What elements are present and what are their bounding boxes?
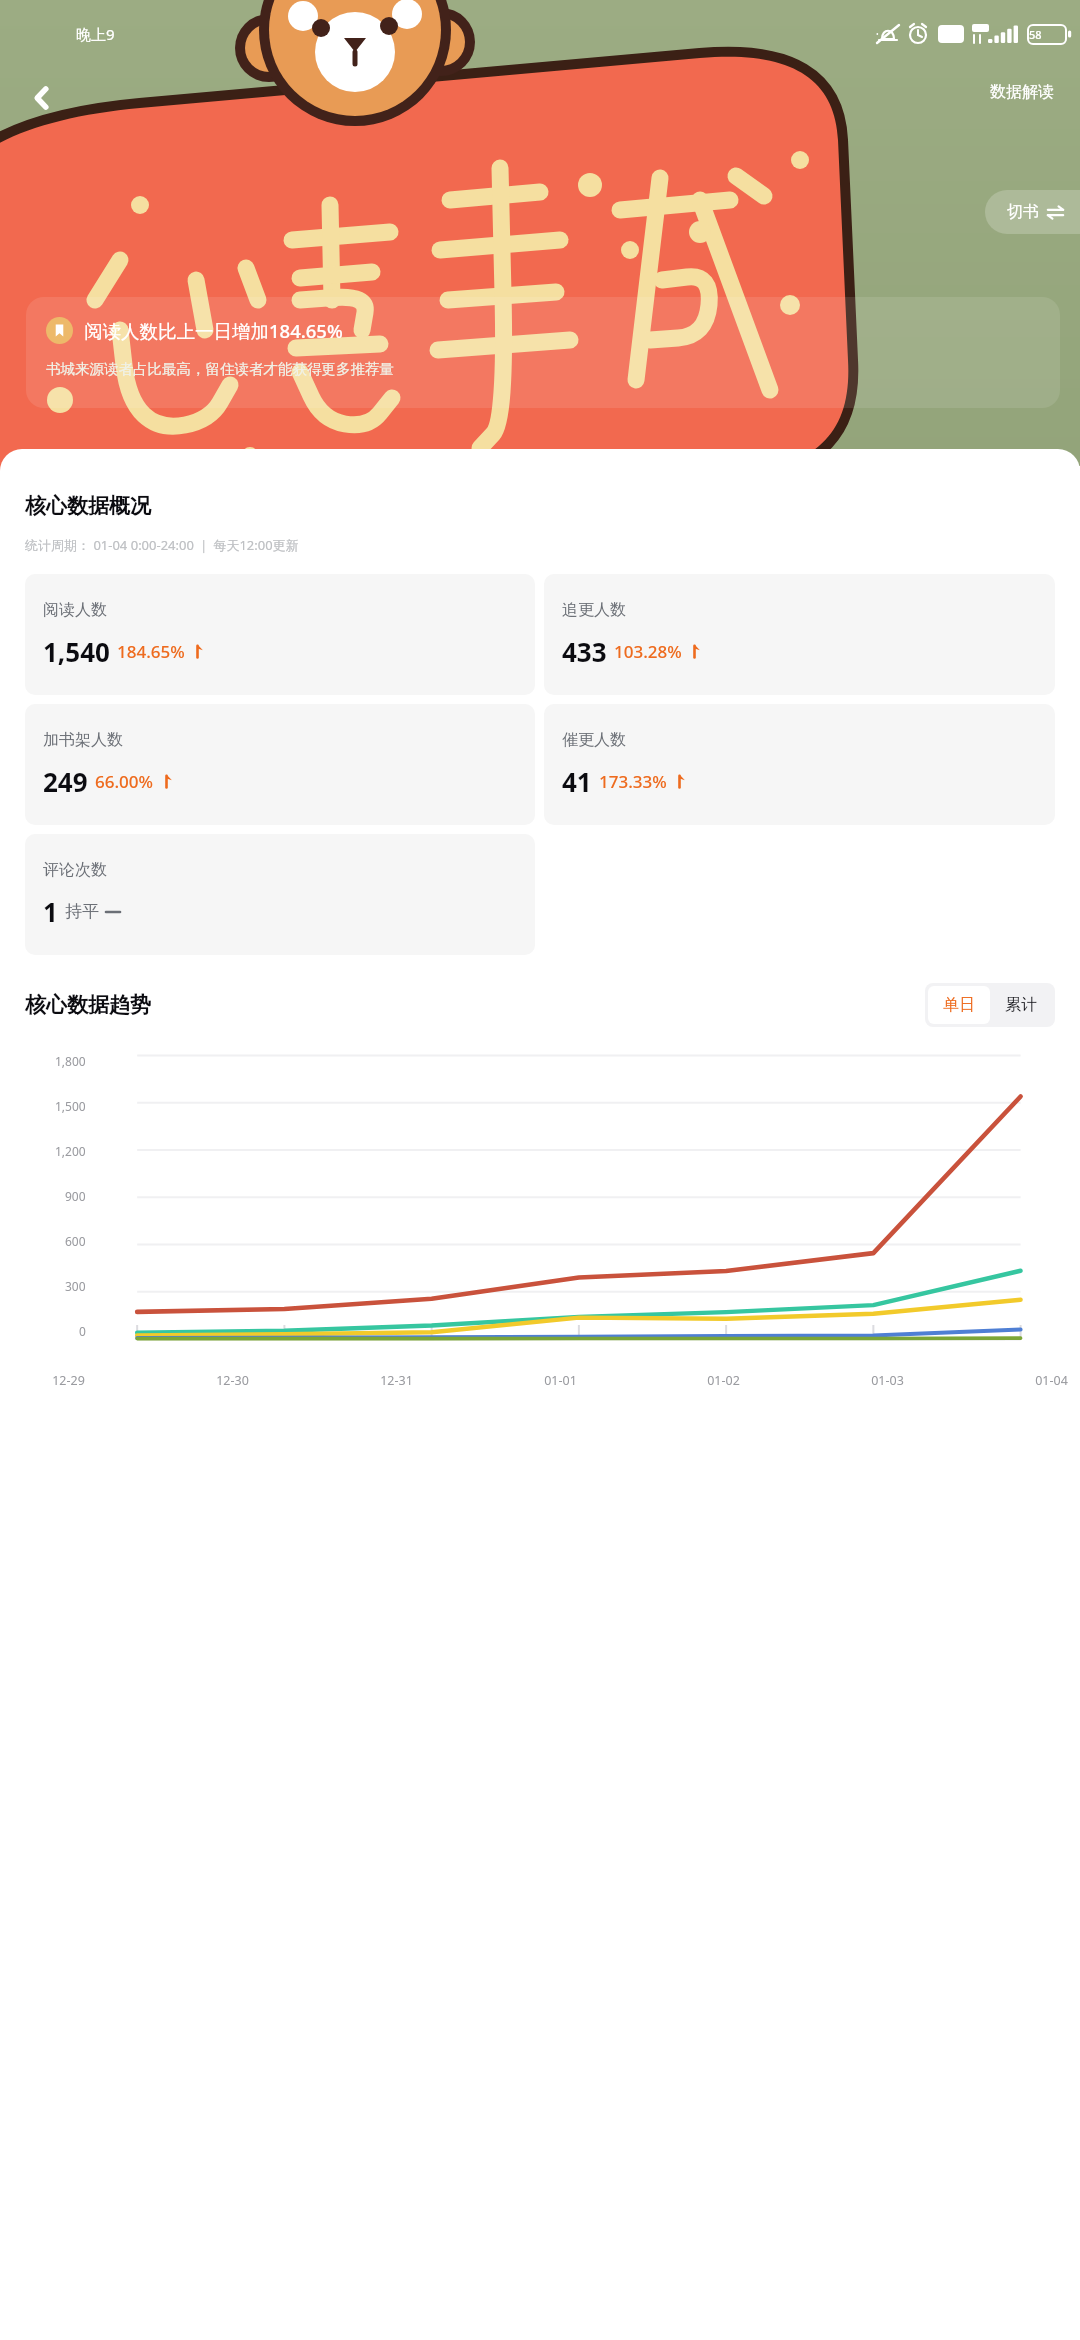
staticText: 数据解读 bbox=[990, 82, 1054, 102]
button[interactable]: 催更人数 bbox=[544, 704, 1055, 825]
staticText: 统计周期： 01-04 0:00-24:00 ｜ 每天12:00更新 bbox=[25, 536, 299, 554]
staticText: 累计 bbox=[1005, 995, 1037, 1015]
staticText: 41 bbox=[562, 764, 592, 799]
staticText: 66.00% bbox=[95, 770, 154, 793]
button[interactable]: 阅读人数比上一日增加184.65% bbox=[26, 297, 1060, 408]
button[interactable]: 追更人数 bbox=[544, 574, 1055, 695]
staticText: 173.33% bbox=[599, 770, 667, 793]
staticText: 评论次数 bbox=[43, 860, 107, 880]
staticText: 1 bbox=[43, 894, 58, 929]
staticText: 1,800 bbox=[55, 1053, 86, 1069]
staticText: 103.28% bbox=[614, 640, 682, 663]
staticText: 书城来源读者占比最高，留住读者才能获得更多推荐量 bbox=[46, 360, 394, 378]
button[interactable]: 累计 bbox=[990, 986, 1052, 1024]
staticText: 催更人数 bbox=[562, 730, 626, 750]
staticText: 0 bbox=[79, 1323, 86, 1339]
staticText: 249 bbox=[43, 764, 88, 799]
staticText: 184.65% bbox=[117, 640, 185, 663]
staticText: 01-04 bbox=[1035, 1372, 1068, 1389]
staticText: 1,540 bbox=[43, 634, 110, 669]
staticText: 433 bbox=[562, 634, 607, 669]
staticText: 单日 bbox=[943, 995, 975, 1015]
staticText: 12-29 bbox=[52, 1372, 85, 1389]
staticText: 12-30 bbox=[216, 1372, 249, 1389]
staticText: 300 bbox=[65, 1278, 86, 1294]
staticText: 900 bbox=[65, 1188, 86, 1204]
staticText: 加书架人数 bbox=[43, 730, 123, 750]
button[interactable]: 单日 bbox=[928, 986, 990, 1024]
button[interactable]: 加书架人数 bbox=[25, 704, 535, 825]
staticText: 阅读人数比上一日增加184.65% bbox=[84, 318, 343, 343]
staticText: 切书 bbox=[1007, 202, 1039, 222]
button[interactable]: 切书 bbox=[985, 190, 1080, 234]
button[interactable]: 阅读人数 bbox=[25, 574, 535, 695]
button[interactable]: 数据解读 bbox=[984, 76, 1060, 108]
staticText: 持平 bbox=[65, 901, 99, 922]
staticText: 58 bbox=[1029, 27, 1042, 42]
button[interactable]: 评论次数 bbox=[25, 834, 535, 955]
staticText: 追更人数 bbox=[562, 600, 626, 620]
staticText: 01-03 bbox=[871, 1372, 904, 1389]
staticText: 01-02 bbox=[707, 1372, 740, 1389]
staticText: 1,500 bbox=[55, 1098, 86, 1114]
staticText: 1,200 bbox=[55, 1143, 86, 1159]
staticText: 核心数据概况 bbox=[25, 493, 151, 519]
button[interactable]: Back bbox=[18, 74, 66, 122]
staticText: 晚上9 bbox=[76, 24, 115, 44]
staticText: 600 bbox=[65, 1233, 86, 1249]
staticText: 阅读人数 bbox=[43, 600, 107, 620]
staticText: 12-31 bbox=[380, 1372, 413, 1389]
staticText: 01-01 bbox=[544, 1372, 577, 1389]
staticText: 核心数据趋势 bbox=[25, 992, 151, 1018]
